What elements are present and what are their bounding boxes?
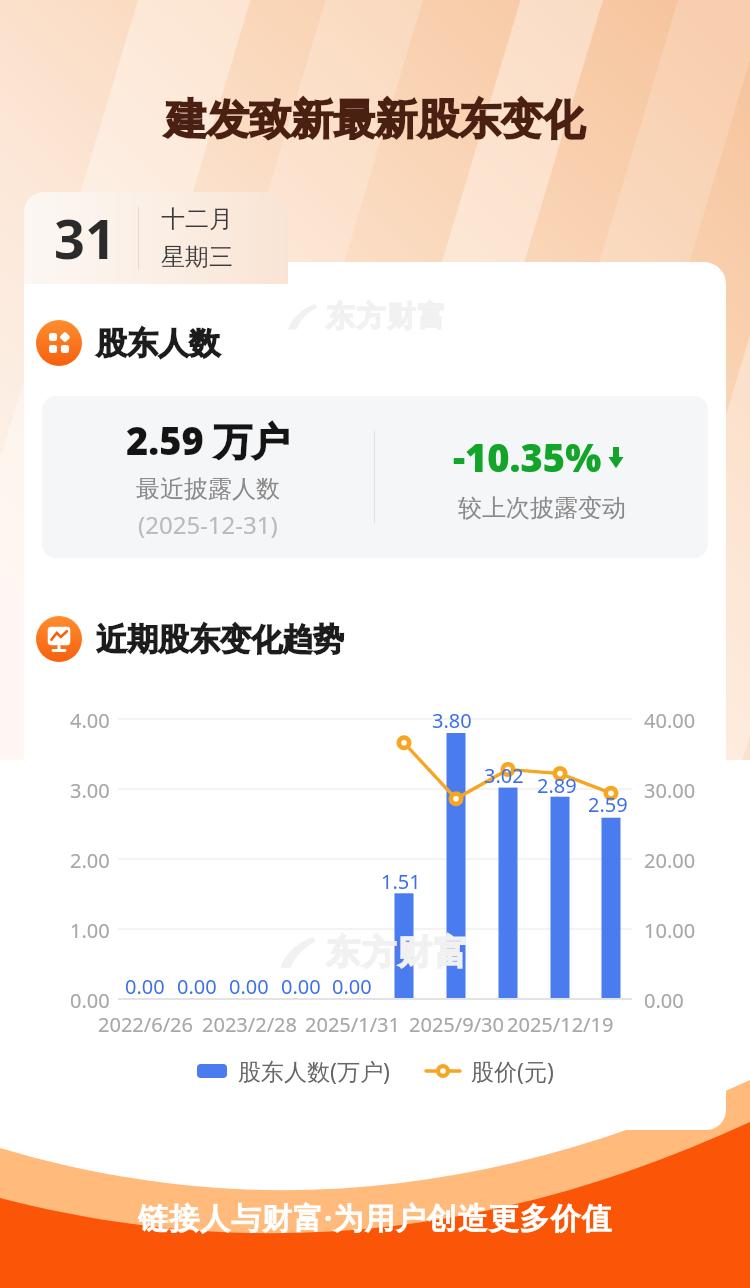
staticText: 0.00 <box>281 973 321 1000</box>
staticText: 最近披露人数 <box>136 474 280 504</box>
staticText: 3.02 <box>484 762 524 789</box>
other: 股东人数 <box>36 320 82 366</box>
staticText: 1.51 <box>381 868 421 895</box>
staticText: 0.00 <box>644 987 684 1014</box>
staticText: 近期股东变化趋势 <box>96 620 344 659</box>
staticText: 2023/2/28 <box>202 1011 297 1038</box>
staticText: 2022/6/26 <box>98 1011 193 1038</box>
button[interactable]: 股价(元) <box>426 1055 554 1086</box>
button[interactable]: 股东人数(万户) <box>197 1055 390 1086</box>
staticText: 2.89 <box>537 772 577 799</box>
staticText: 0.00 <box>125 973 165 1000</box>
staticText: 31 <box>54 201 116 275</box>
staticText: 建发致新最新股东变化 <box>165 94 585 147</box>
staticText: 星期三 <box>161 242 233 272</box>
staticText: 3.80 <box>432 707 472 734</box>
staticText: 股东人数(万户) <box>238 1055 390 1086</box>
staticText: 链接人与财富·为用户创造更多价值 <box>138 1197 613 1238</box>
staticText: 20.00 <box>644 847 696 874</box>
staticText: 0.00 <box>70 987 110 1014</box>
staticText: 2.59 <box>588 791 628 818</box>
staticText: 东方财富 <box>326 299 449 335</box>
staticText: 2025/9/30 <box>409 1011 504 1038</box>
staticText: 10.00 <box>644 917 696 944</box>
button[interactable]: 股东人数 <box>36 320 220 366</box>
button[interactable]: 2.59 万户 <box>42 396 708 558</box>
button[interactable]: 31 <box>24 192 288 284</box>
staticText: 2.00 <box>70 847 110 874</box>
staticText: 1.00 <box>70 917 110 944</box>
staticText: 4.00 <box>70 707 110 734</box>
staticText: 2025/12/19 <box>507 1011 614 1038</box>
staticText: 0.00 <box>332 973 372 1000</box>
staticText: 40.00 <box>644 707 696 734</box>
button[interactable]: 近期股东变化趋势 <box>36 616 344 662</box>
staticText: 股东人数 <box>96 324 220 363</box>
staticText: 0.00 <box>177 973 217 1000</box>
staticText: 0.00 <box>229 973 269 1000</box>
staticText: 十二月 <box>161 204 233 234</box>
staticText: 东方财富 <box>326 931 471 974</box>
staticText: 股价(元) <box>471 1055 554 1086</box>
staticText: 30.00 <box>644 777 696 804</box>
staticText: 2.59 万户 <box>126 414 290 466</box>
staticText: -10.35% <box>453 431 602 483</box>
staticText: 2025/1/31 <box>305 1011 400 1038</box>
staticText: 3.00 <box>70 777 110 804</box>
staticText: 较上次披露变动 <box>458 493 626 523</box>
other: 近期股东变化趋势 <box>36 616 82 662</box>
staticText: (2025-12-31) <box>138 508 278 541</box>
